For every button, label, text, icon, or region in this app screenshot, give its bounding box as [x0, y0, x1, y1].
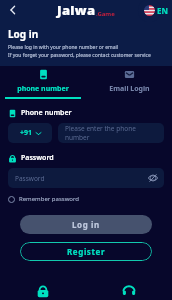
staticText: .Game: [96, 10, 115, 18]
button[interactable]: +91: [8, 123, 52, 143]
button[interactable]: phone number: [0, 66, 86, 100]
button[interactable]: Customer service: [86, 284, 172, 298]
staticText: Log in: [8, 27, 39, 41]
staticText: +91: [20, 128, 33, 138]
staticText: EN: [157, 5, 168, 16]
staticText: Password: [15, 174, 45, 183]
staticText: Remember password: [19, 195, 80, 203]
staticText: Phone number: [21, 108, 72, 118]
button[interactable]: Forgot password: [0, 284, 86, 298]
button[interactable]: Show password: [148, 173, 158, 183]
staticText: Please log in with your phone number or …: [8, 44, 119, 51]
button[interactable]: Register: [20, 242, 152, 261]
button[interactable]: Password: [8, 168, 164, 188]
staticText: Email Login: [109, 84, 150, 94]
button[interactable]: Please enter the phone number: [58, 123, 164, 143]
staticText: Log in: [72, 219, 100, 230]
staticText: Register: [67, 246, 106, 257]
button[interactable]: Email Login: [86, 66, 172, 100]
staticText: If you forget your password, please cont…: [8, 52, 151, 59]
staticText: Jalwa: [57, 1, 96, 19]
button[interactable]: Remember password: [8, 195, 80, 203]
staticText: Password: [21, 153, 54, 163]
button[interactable]: Log in: [20, 215, 152, 234]
button[interactable]: Back: [4, 1, 22, 19]
staticText: Please enter the phone number: [65, 124, 157, 142]
button[interactable]: Language English: [144, 5, 168, 16]
staticText: phone number: [17, 84, 69, 94]
